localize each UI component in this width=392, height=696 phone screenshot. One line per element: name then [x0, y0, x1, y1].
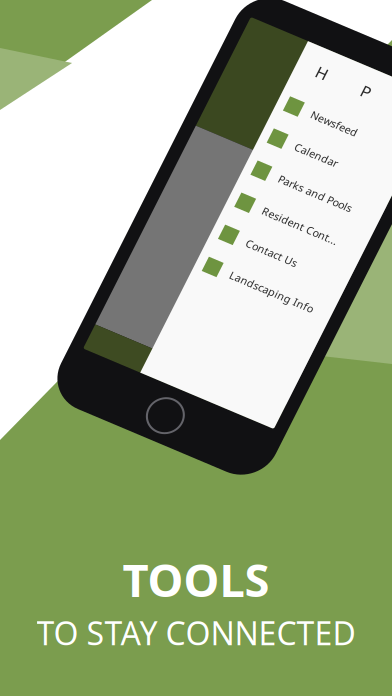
button[interactable]: Newsfeed: [326, 63, 392, 99]
button[interactable]: Contact Us: [326, 207, 392, 243]
button[interactable]: Profile: [388, 26, 392, 52]
button[interactable]: Landscaping Info: [326, 243, 392, 279]
staticText: Newsfeed: [362, 74, 392, 88]
button[interactable]: Resident Cont...: [326, 171, 392, 207]
staticText: H: [347, 28, 359, 50]
button[interactable]: Home: [340, 26, 366, 52]
staticText: TO STAY CONNECTED: [36, 611, 355, 654]
staticText: Landscaping Info: [362, 254, 392, 268]
button[interactable]: Calendar: [326, 99, 392, 135]
staticText: Contact Us: [362, 218, 392, 232]
button[interactable]: Parks and Pools: [326, 135, 392, 171]
staticText: TOOLS: [122, 549, 269, 609]
